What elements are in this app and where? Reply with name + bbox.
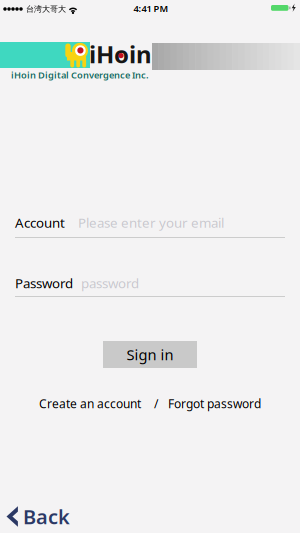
button[interactable]: Create an account <box>39 395 141 411</box>
staticText: Account <box>15 214 65 231</box>
staticText: Create an account <box>39 395 141 411</box>
staticText: iHoin Digital Convergence Inc. <box>11 69 149 81</box>
button[interactable]: Back <box>6 503 70 530</box>
staticText: 4:41 PM <box>133 2 168 15</box>
staticText: Forgot password <box>168 395 261 411</box>
staticText: / <box>154 395 158 411</box>
button[interactable]: Forgot password <box>168 395 261 411</box>
staticText: Back <box>23 503 70 530</box>
staticText: password <box>81 274 139 292</box>
staticText: Sign in <box>126 345 173 364</box>
staticText: Password <box>15 274 73 292</box>
staticText: iHoin <box>89 38 152 70</box>
staticText: Please enter your email <box>78 214 224 231</box>
staticText: 台湾大哥大 <box>26 4 66 14</box>
button[interactable]: Sign in <box>103 341 197 368</box>
